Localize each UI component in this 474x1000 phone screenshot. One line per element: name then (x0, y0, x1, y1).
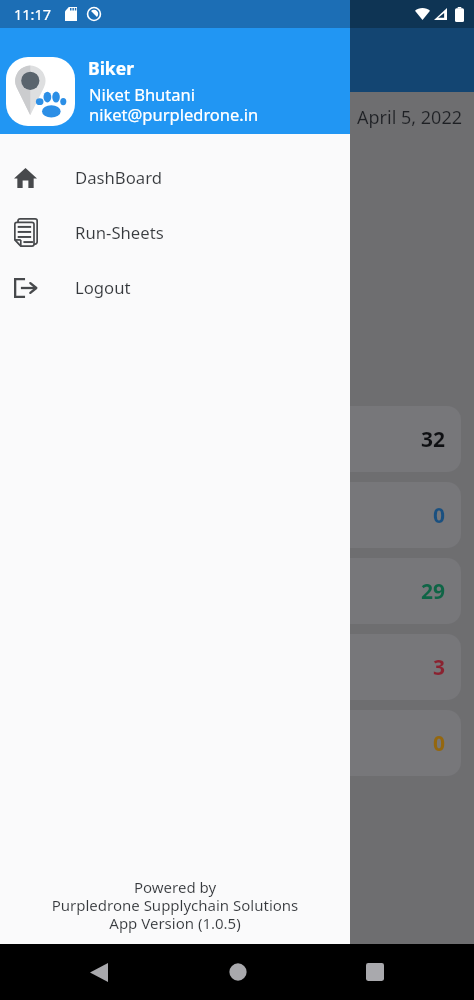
button[interactable]: DashBoard (0, 150, 350, 205)
button[interactable]: Logout (0, 260, 350, 315)
button[interactable]: 32 (13, 406, 461, 472)
button[interactable]: 0 (13, 710, 461, 776)
button[interactable]: Recent apps (354, 951, 396, 993)
button[interactable]: 29 (13, 558, 461, 624)
staticText: 11:17 (14, 4, 52, 24)
staticText: Logout (75, 276, 131, 299)
staticText: Niket Bhutani niket@purpledrone.in (89, 83, 259, 126)
staticText: 32 (421, 425, 446, 454)
button[interactable]: Biker (0, 28, 350, 134)
staticText: April 5, 2022 (0, 105, 462, 130)
button[interactable]: 0 (13, 482, 461, 548)
staticText: 0 (433, 501, 446, 530)
staticText: 0 (433, 729, 446, 758)
button[interactable]: Home (217, 951, 259, 993)
staticText: Biker (88, 56, 134, 80)
staticText: DashBoard (75, 166, 162, 189)
staticText: Run-Sheets (75, 221, 164, 244)
staticText: 29 (421, 577, 446, 606)
staticText: 3 (433, 653, 446, 682)
button[interactable]: Close navigation drawer (350, 0, 474, 1000)
staticText: Powered by Purpledrone Supplychain Solut… (0, 877, 350, 933)
button[interactable]: Back (78, 951, 120, 993)
button[interactable]: Run-Sheets (0, 205, 350, 260)
button[interactable]: 3 (13, 634, 461, 700)
